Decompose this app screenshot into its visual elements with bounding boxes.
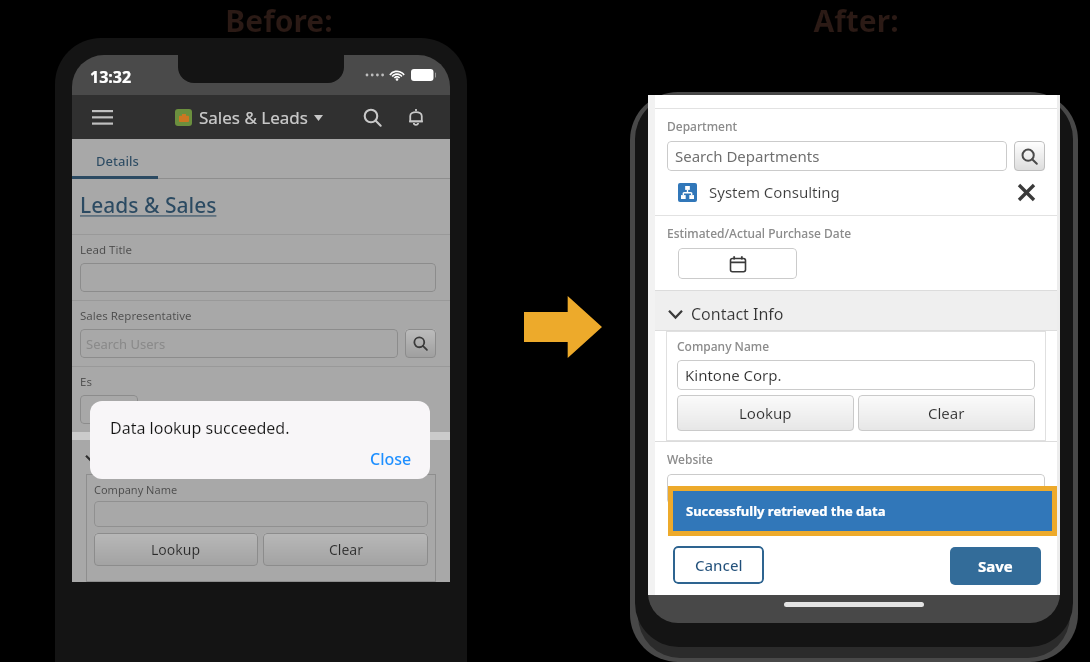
button[interactable]: Cancel [673, 546, 764, 584]
staticText: Clear [928, 403, 965, 423]
staticText: Search Users [86, 335, 166, 353]
staticText: After: [813, 0, 899, 41]
button[interactable]: Search Departments [667, 141, 1007, 171]
button[interactable]: Search [352, 97, 392, 137]
staticText: Company Name [677, 338, 770, 354]
staticText: Data lookup succeeded. [110, 417, 290, 439]
staticText: Lead Title [80, 242, 132, 258]
button[interactable]: Search users [405, 329, 436, 358]
button[interactable]: Search departments [1014, 141, 1045, 171]
button[interactable] [94, 501, 428, 527]
staticText: Lookup [739, 403, 792, 423]
staticText: Sales Representative [80, 308, 192, 324]
button[interactable]: Clear [858, 395, 1035, 431]
button[interactable]: Contact Info [655, 291, 1057, 330]
staticText: Estimated/Actual Purchase Date [667, 225, 852, 241]
other: Arrow pointing right [524, 296, 602, 358]
staticText: Website [667, 451, 713, 467]
staticText: Clear [329, 540, 363, 559]
staticText: Cancel [695, 555, 743, 575]
staticText: Search Departments [675, 146, 820, 166]
staticText: System Consulting [709, 182, 840, 202]
staticText: Close [370, 448, 412, 470]
button[interactable]: System Consulting [667, 179, 1045, 205]
staticText: Contact Info [691, 303, 784, 325]
staticText: Save [978, 556, 1013, 576]
button[interactable] [667, 474, 1045, 504]
staticText: Sales & Leads [199, 106, 308, 129]
button[interactable]: Leads & Sales [80, 191, 217, 220]
button[interactable]: Lookup [677, 395, 854, 431]
button[interactable]: Lookup [94, 533, 258, 566]
staticText: Department [667, 118, 738, 134]
staticText: Before: [225, 0, 333, 41]
button[interactable]: Clear [263, 533, 428, 566]
button[interactable]: Details [96, 152, 139, 170]
button[interactable] [80, 395, 138, 424]
button[interactable]: Close [370, 448, 412, 470]
button[interactable]: Save [950, 547, 1041, 585]
staticText: Successfully retrieved the data [686, 502, 886, 520]
button[interactable]: Search Users [80, 329, 398, 358]
button[interactable]: Menu [80, 95, 124, 139]
button[interactable] [80, 263, 436, 292]
staticText: Kintone Corp. [685, 365, 782, 385]
button[interactable] [678, 248, 797, 279]
staticText: Company Name [94, 482, 178, 497]
staticText: Es [80, 374, 92, 390]
button[interactable]: Kintone Corp. [677, 360, 1035, 390]
button[interactable]: Sales & Leads [175, 106, 323, 129]
button[interactable]: Remove [1013, 179, 1039, 205]
button[interactable]: Notifications [396, 97, 436, 137]
staticText: 13:32 [90, 66, 132, 88]
staticText: Lookup [151, 540, 201, 559]
